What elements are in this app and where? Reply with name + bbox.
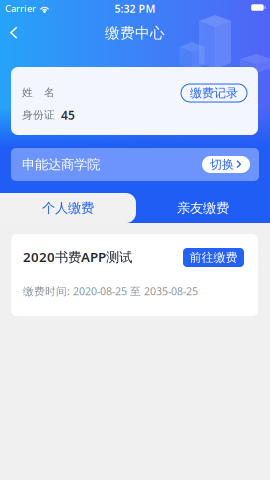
staticText: 5:32 PM (114, 1, 155, 16)
staticText: 申能达商学院 (22, 156, 100, 173)
button[interactable]: 亲友缴费 (136, 193, 270, 223)
button[interactable]: 个人缴费 (0, 193, 136, 223)
button[interactable]: 缴费记录 (181, 84, 247, 102)
staticText: 身份证 (22, 108, 55, 122)
staticText: 切换 (210, 157, 234, 172)
staticText: 缴费记录 (190, 86, 238, 100)
button[interactable]: 申能达商学院 (11, 148, 259, 181)
button[interactable]: 前往缴费 (183, 248, 244, 267)
staticText: 前往缴费 (189, 250, 237, 265)
staticText: 亲友缴费 (177, 200, 229, 216)
staticText: 45 (61, 107, 75, 123)
staticText: 个人缴费 (42, 200, 94, 216)
staticText: 缴费时间: 2020-08-25 至 2035-08-25 (23, 284, 198, 298)
staticText: 姓 名 (22, 86, 55, 99)
button[interactable]: Back (0, 21, 28, 45)
staticText: Carrier (5, 2, 36, 15)
staticText: 2020书费APP测试 (23, 248, 132, 266)
staticText: 缴费中心 (105, 24, 165, 42)
